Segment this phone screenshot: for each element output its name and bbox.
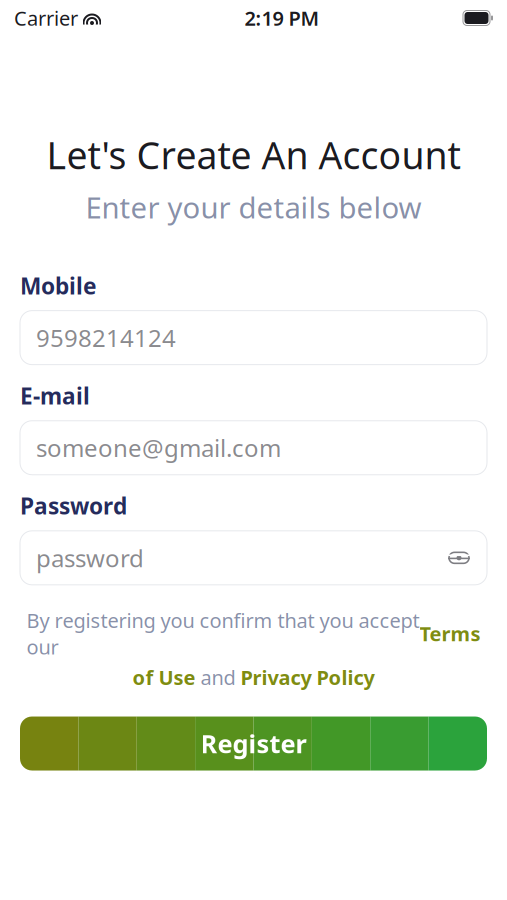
staticText: 9598214124	[36, 322, 176, 354]
staticText: 2:19 PM	[244, 5, 319, 31]
button[interactable]: Terms	[419, 620, 480, 647]
staticText: Register	[200, 727, 306, 760]
staticText: Password	[20, 491, 127, 521]
button[interactable]: Privacy Policy	[240, 664, 374, 691]
staticText: Mobile	[20, 270, 97, 301]
staticText: By registering you confirm that you acce…	[26, 607, 419, 660]
staticText: Terms	[419, 620, 480, 647]
staticText: E-mail	[20, 381, 90, 411]
button[interactable]: someone@gmail.com	[20, 421, 487, 475]
staticText: Enter your details below	[85, 188, 421, 227]
button[interactable]: 9598214124	[20, 311, 487, 365]
button[interactable]: of Use	[132, 664, 195, 691]
staticText: and	[195, 664, 240, 691]
staticText: Carrier	[14, 5, 78, 31]
staticText: Let's Create An Account	[46, 130, 460, 180]
staticText: password	[36, 542, 144, 574]
staticText: someone@gmail.com	[36, 432, 281, 464]
button[interactable]: Register	[20, 716, 487, 770]
button[interactable]: password	[20, 531, 487, 585]
staticText: of Use	[132, 664, 195, 691]
staticText: Privacy Policy	[240, 664, 374, 691]
